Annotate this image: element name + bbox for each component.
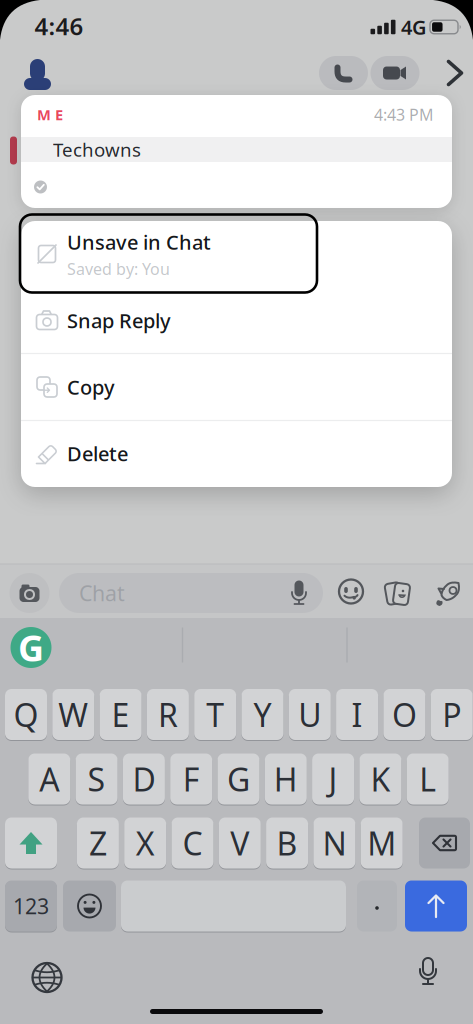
- staticText: G: [227, 758, 250, 800]
- button[interactable]: C: [171, 816, 213, 869]
- staticText: E: [112, 693, 130, 736]
- staticText: F: [183, 758, 200, 800]
- button[interactable]: [357, 880, 397, 931]
- button[interactable]: Y: [241, 688, 283, 741]
- staticText: Z: [89, 822, 107, 864]
- button[interactable]: F: [170, 752, 212, 805]
- button[interactable]: J: [312, 752, 354, 805]
- button[interactable]: K: [359, 752, 401, 805]
- staticText: M: [367, 822, 396, 864]
- button[interactable]: M: [361, 816, 403, 869]
- staticText: V: [230, 822, 249, 864]
- button[interactable]: Copy: [21, 354, 452, 420]
- staticText: Saved by: You: [67, 258, 170, 279]
- staticText: U: [298, 693, 321, 736]
- button[interactable]: D: [123, 752, 165, 805]
- staticText: K: [370, 758, 390, 800]
- staticText: Techowns: [53, 137, 141, 162]
- staticText: 4G: [401, 14, 427, 40]
- staticText: N: [322, 822, 346, 864]
- staticText: W: [58, 693, 88, 736]
- staticText: L: [419, 758, 436, 800]
- button[interactable]: Unsave in Chat: [21, 221, 452, 287]
- button[interactable]: U: [289, 688, 331, 741]
- button[interactable]: Chat: [59, 573, 323, 613]
- staticText: Chat: [79, 579, 125, 607]
- button[interactable]: [419, 817, 470, 868]
- button[interactable]: Techowns: [21, 137, 452, 162]
- staticText: H: [274, 758, 298, 800]
- staticText: T: [206, 693, 224, 736]
- button[interactable]: Q: [5, 688, 47, 741]
- button[interactable]: W: [52, 688, 94, 741]
- staticText: S: [88, 758, 106, 800]
- button[interactable]: [21, 57, 54, 91]
- button[interactable]: [433, 579, 467, 609]
- button[interactable]: [445, 60, 465, 86]
- staticText: B: [277, 822, 298, 864]
- staticText: M E: [37, 105, 63, 124]
- button[interactable]: 123: [5, 879, 57, 932]
- button[interactable]: B: [266, 816, 308, 869]
- staticText: J: [329, 758, 338, 800]
- button[interactable]: T: [194, 688, 236, 741]
- button[interactable]: [382, 578, 412, 608]
- staticText: 4:46: [34, 10, 83, 42]
- button[interactable]: [405, 880, 467, 931]
- button[interactable]: A: [28, 752, 70, 805]
- button[interactable]: [9, 573, 49, 613]
- staticText: 4:43 PM: [374, 104, 434, 125]
- button[interactable]: S: [76, 752, 118, 805]
- button[interactable]: Delete: [21, 420, 452, 486]
- staticText: G: [18, 624, 44, 671]
- button[interactable]: O: [383, 688, 425, 741]
- staticText: Delete: [67, 440, 128, 467]
- button[interactable]: [413, 956, 443, 990]
- button[interactable]: G: [10, 627, 51, 668]
- staticText: X: [136, 822, 155, 864]
- button[interactable]: [30, 960, 64, 994]
- staticText: Q: [13, 693, 38, 736]
- staticText: R: [158, 693, 178, 736]
- button[interactable]: [337, 577, 365, 605]
- staticText: O: [392, 693, 417, 736]
- button[interactable]: P: [431, 688, 473, 741]
- button[interactable]: Snap Reply: [21, 287, 452, 353]
- staticText: Copy: [67, 374, 115, 400]
- button[interactable]: G: [217, 752, 259, 805]
- button[interactable]: [370, 56, 419, 90]
- button[interactable]: [319, 56, 368, 90]
- button[interactable]: E: [100, 688, 142, 741]
- staticText: D: [132, 758, 155, 800]
- button[interactable]: N: [313, 816, 355, 869]
- staticText: A: [39, 758, 59, 800]
- button[interactable]: I: [336, 688, 378, 741]
- staticText: Unsave in Chat: [67, 229, 211, 255]
- staticText: C: [182, 822, 202, 864]
- staticText: Y: [253, 693, 271, 736]
- button[interactable]: V: [219, 816, 261, 869]
- staticText: 123: [13, 892, 49, 920]
- button[interactable]: [63, 880, 116, 931]
- staticText: I: [352, 693, 363, 736]
- button[interactable]: X: [124, 816, 166, 869]
- button[interactable]: H: [265, 752, 307, 805]
- staticText: Snap Reply: [67, 307, 171, 334]
- staticText: P: [442, 693, 461, 736]
- button[interactable]: [5, 816, 57, 869]
- button[interactable]: [121, 879, 346, 932]
- button[interactable]: L: [407, 752, 449, 805]
- button[interactable]: Z: [77, 816, 119, 869]
- button[interactable]: R: [147, 688, 189, 741]
